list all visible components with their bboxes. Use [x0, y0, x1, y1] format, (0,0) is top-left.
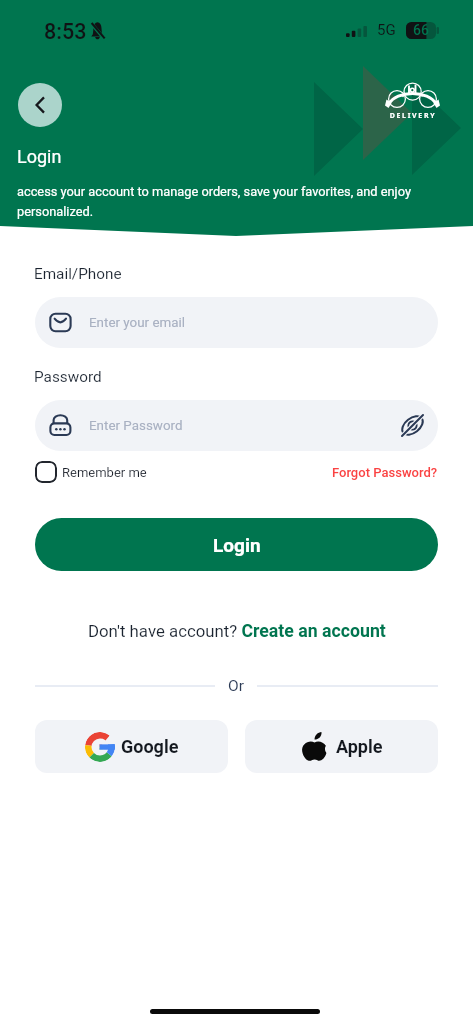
- staticText: Forgot Password?: [332, 465, 438, 480]
- staticText: DELIVERY: [387, 111, 439, 121]
- button[interactable]: Don't have account? Create an account: [88, 621, 386, 642]
- button[interactable]: Google: [35, 720, 228, 773]
- staticText: Login: [17, 146, 62, 167]
- staticText: Don't have account? Create an account: [88, 621, 386, 642]
- button[interactable]: Forgot Password?: [332, 465, 438, 480]
- staticText: Remember me: [62, 465, 147, 480]
- staticText: Or: [228, 677, 244, 695]
- staticText: 66: [413, 22, 429, 38]
- button[interactable]: Back: [18, 83, 62, 127]
- button[interactable]: Apple: [245, 720, 438, 773]
- staticText: Password: [34, 368, 102, 386]
- staticText: Google: [121, 736, 179, 757]
- staticText: 5G: [377, 21, 396, 39]
- button[interactable]: Remember me: [35, 461, 147, 483]
- staticText: 8:53: [44, 19, 87, 44]
- button[interactable]: Login: [35, 518, 438, 571]
- staticText: Enter your email: [89, 315, 186, 331]
- button[interactable]: Enter your email: [35, 297, 438, 348]
- staticText: Enter Password: [89, 418, 183, 434]
- staticText: access your account to manage orders, sa…: [17, 184, 425, 219]
- staticText: Login: [213, 534, 261, 556]
- staticText: Email/Phone: [34, 265, 122, 283]
- button[interactable]: Enter Password: [35, 400, 438, 451]
- button[interactable]: Toggle password visibility: [402, 415, 423, 436]
- staticText: Apple: [336, 736, 383, 757]
